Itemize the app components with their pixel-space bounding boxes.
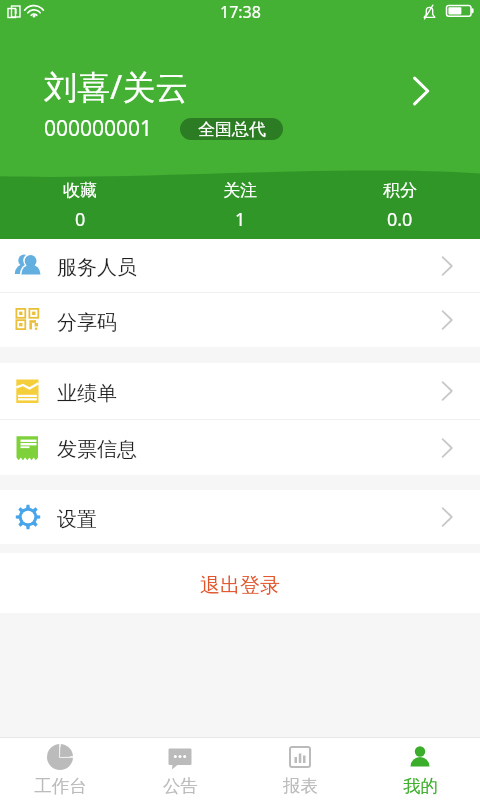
staticText: 0.0: [387, 207, 413, 232]
button[interactable]: 业绩单: [0, 363, 480, 419]
button[interactable]: 我的: [360, 738, 480, 800]
staticText: 退出登录: [200, 573, 280, 598]
button[interactable]: 关注: [160, 180, 320, 232]
button[interactable]: 报表: [240, 738, 360, 800]
button[interactable]: 工作台: [0, 738, 120, 800]
button[interactable]: 分享码: [0, 293, 480, 347]
staticText: 报表: [283, 775, 318, 797]
staticText: 设置: [57, 507, 97, 532]
button[interactable]: 退出登录: [0, 553, 480, 613]
button[interactable]: 收藏: [0, 180, 160, 232]
button[interactable]: 发票信息: [0, 420, 480, 475]
staticText: 业绩单: [57, 381, 117, 406]
staticText: 积分: [383, 180, 417, 201]
staticText: 全国总代: [198, 119, 266, 140]
staticText: 公告: [163, 775, 198, 797]
button[interactable]: 公告: [120, 738, 240, 800]
staticText: 工作台: [34, 775, 87, 797]
staticText: 刘喜/关云: [44, 64, 189, 109]
button[interactable]: 设置: [0, 490, 480, 544]
staticText: 关注: [223, 180, 257, 201]
staticText: 17:38: [220, 1, 261, 23]
staticText: 分享码: [57, 310, 117, 335]
staticText: 000000001: [44, 114, 153, 143]
button[interactable]: 服务人员: [0, 239, 480, 292]
staticText: 我的: [403, 775, 438, 797]
staticText: 服务人员: [57, 255, 137, 280]
button[interactable]: 积分: [320, 180, 480, 232]
staticText: 1: [235, 207, 246, 232]
staticText: 收藏: [63, 180, 97, 201]
button[interactable]: Profile detail: [398, 69, 442, 113]
staticText: 0: [75, 207, 86, 232]
staticText: 发票信息: [57, 437, 137, 462]
